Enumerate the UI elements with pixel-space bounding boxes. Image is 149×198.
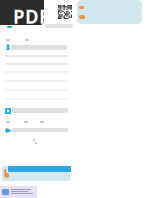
staticText: PDF: [13, 4, 49, 29]
